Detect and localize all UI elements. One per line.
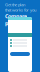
- button[interactable]: [10, 52, 30, 56]
- staticText: that works for you: [5, 7, 36, 13]
- staticText: Compare plans: [5, 13, 27, 27]
- staticText: Get the plan: [5, 2, 25, 7]
